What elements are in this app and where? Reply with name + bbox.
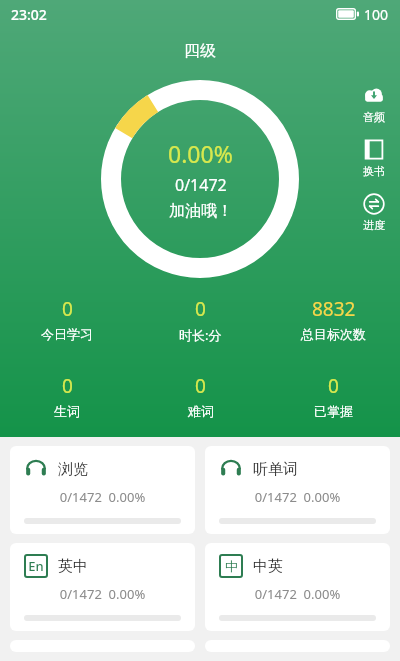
button[interactable]: 8832 xyxy=(267,294,400,344)
button[interactable]: Download audio xyxy=(354,82,394,126)
staticText: 0 xyxy=(62,373,73,399)
staticText: 0 xyxy=(62,296,73,322)
staticText: 英中 xyxy=(58,557,88,576)
staticText: 中 xyxy=(225,558,238,574)
staticText: 四级 xyxy=(184,41,216,61)
button[interactable]: 0 xyxy=(134,294,267,346)
staticText: 0/1472 0.00% xyxy=(24,488,181,506)
staticText: 已掌握 xyxy=(314,403,353,419)
staticText: 0 xyxy=(195,373,206,399)
staticText: En xyxy=(28,557,44,575)
button[interactable]: 0 xyxy=(0,294,134,344)
button[interactable]: 0 xyxy=(267,371,400,421)
staticText: 加油哦！ xyxy=(169,201,233,221)
staticText: 进度 xyxy=(363,218,385,232)
staticText: 0 xyxy=(328,373,339,399)
staticText: 0/1472 0.00% xyxy=(219,488,376,506)
staticText: 总目标次数 xyxy=(301,326,366,342)
staticText: 8832 xyxy=(312,296,356,322)
button[interactable]: 0 xyxy=(134,371,267,421)
staticText: 时长:分 xyxy=(179,326,222,344)
button[interactable]: 听单词 xyxy=(205,446,390,534)
button[interactable]: Sync progress xyxy=(354,190,394,234)
staticText: 今日学习 xyxy=(41,326,93,342)
staticText: 100 xyxy=(364,5,389,24)
staticText: 音频 xyxy=(363,110,385,124)
button[interactable]: Change book xyxy=(354,136,394,180)
button[interactable]: 中 xyxy=(205,543,390,631)
staticText: 难词 xyxy=(188,403,214,419)
staticText: 中英 xyxy=(253,557,283,576)
button[interactable]: Study progress 0.00 percent xyxy=(101,80,299,278)
button[interactable]: En xyxy=(10,543,195,631)
staticText: 0/1472 xyxy=(175,174,227,196)
staticText: 0 xyxy=(195,296,206,322)
staticText: 0/1472 0.00% xyxy=(24,585,181,603)
staticText: 0/1472 0.00% xyxy=(219,585,376,603)
staticText: 换书 xyxy=(363,164,385,178)
staticText: 0.00% xyxy=(168,138,233,169)
button[interactable]: 0 xyxy=(0,371,134,421)
staticText: 生词 xyxy=(54,403,80,419)
button[interactable]: 浏览 xyxy=(10,446,195,534)
staticText: 23:02 xyxy=(11,5,47,24)
staticText: 听单词 xyxy=(253,460,298,479)
staticText: 浏览 xyxy=(58,460,88,479)
